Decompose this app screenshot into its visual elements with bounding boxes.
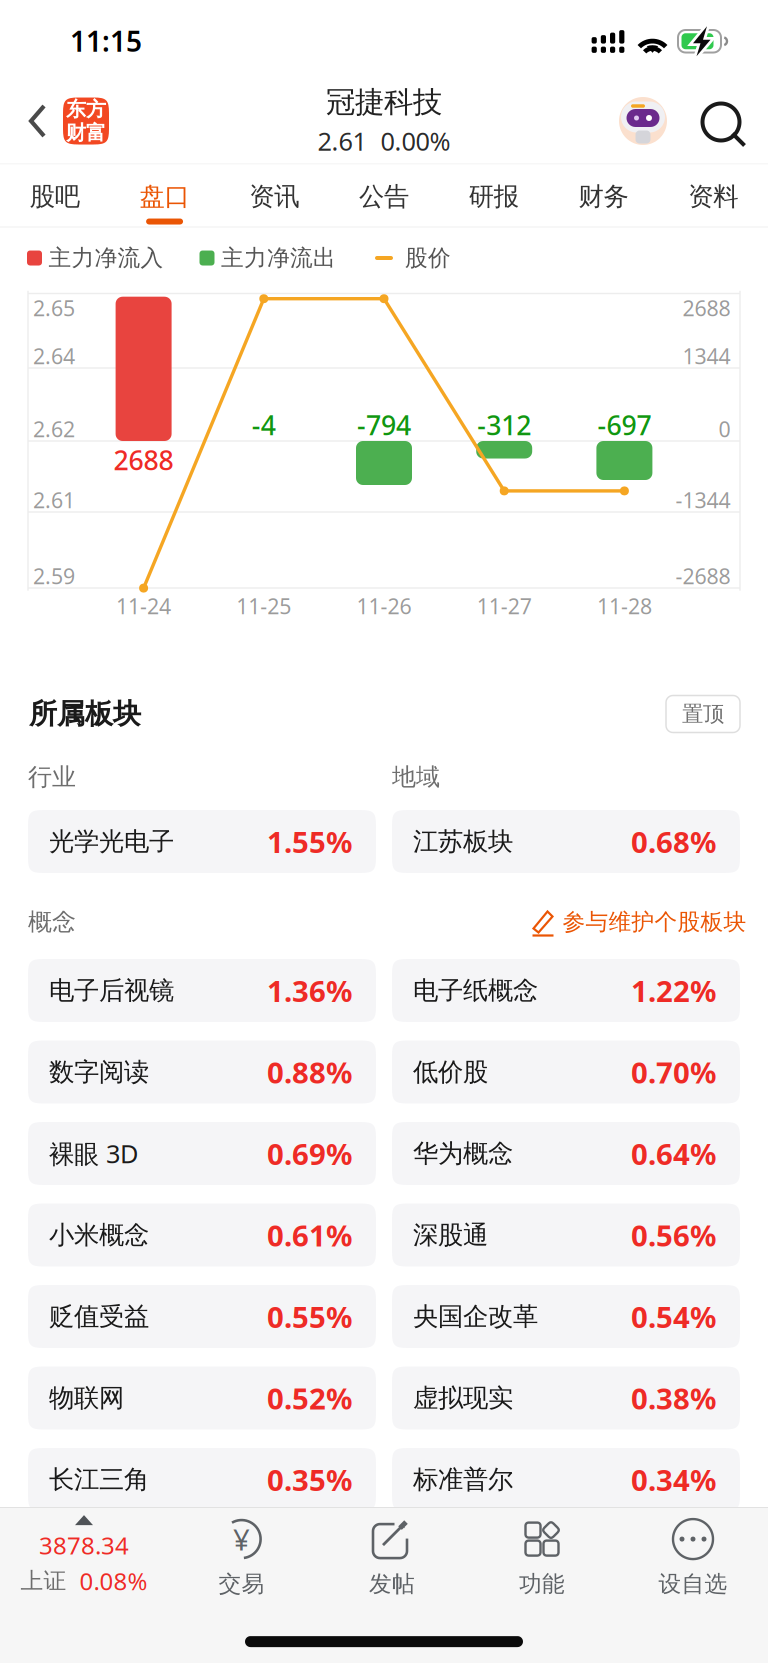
staticText: -4: [252, 407, 276, 443]
button[interactable]: 资料: [658, 164, 768, 227]
button[interactable]: 标准普尔: [392, 1448, 740, 1511]
staticText: ¥: [233, 1520, 250, 1559]
button[interactable]: 研报: [439, 164, 549, 227]
staticText: 1.36%: [267, 971, 352, 1010]
staticText: 0.56%: [631, 1215, 716, 1254]
button[interactable]: 央国企改革: [392, 1285, 740, 1348]
button[interactable]: 返回: [0, 78, 121, 164]
button[interactable]: 电子纸概念: [392, 959, 740, 1022]
button[interactable]: 搜索: [682, 78, 758, 164]
staticText: 2.59: [33, 562, 75, 590]
button[interactable]: 资讯: [219, 164, 329, 227]
button[interactable]: 股吧: [0, 164, 110, 227]
button[interactable]: 深股通: [392, 1203, 740, 1266]
staticText: 标准普尔: [413, 1464, 513, 1495]
staticText: 置顶: [682, 701, 724, 727]
staticText: -312: [477, 407, 531, 443]
staticText: 功能: [519, 1570, 565, 1598]
staticText: 主力净流入: [48, 244, 163, 272]
staticText: 东方: [66, 97, 106, 121]
button[interactable]: 物联网: [28, 1366, 376, 1429]
staticText: 上证: [20, 1567, 66, 1595]
staticText: 深股通: [413, 1219, 488, 1250]
staticText: -697: [597, 407, 651, 443]
staticText: 交易: [219, 1570, 265, 1598]
button[interactable]: 华为概念: [392, 1122, 740, 1185]
staticText: -2688: [675, 562, 730, 590]
staticText: 长江三角: [49, 1464, 149, 1495]
button[interactable]: 公告: [329, 164, 439, 227]
staticText: 0: [718, 415, 730, 443]
staticText: 0.69%: [267, 1134, 352, 1173]
button[interactable]: 盘口: [110, 164, 219, 227]
staticText: 0.34%: [631, 1460, 716, 1499]
staticText: 财富: [66, 120, 106, 145]
staticText: 0.55%: [267, 1297, 352, 1336]
button[interactable]: 设自选: [620, 1512, 765, 1604]
button[interactable]: 低价股: [392, 1040, 740, 1103]
button[interactable]: 虚拟现实: [392, 1366, 740, 1429]
button[interactable]: 发帖: [319, 1512, 464, 1604]
staticText: 0.88%: [267, 1052, 352, 1091]
staticText: 电子纸概念: [413, 975, 538, 1006]
staticText: 0.64%: [631, 1134, 716, 1173]
staticText: 11-27: [477, 592, 532, 620]
button[interactable]: 功能: [469, 1512, 614, 1604]
button[interactable]: 长江三角: [28, 1448, 376, 1511]
staticText: 0.08%: [79, 1565, 147, 1597]
staticText: 冠捷科技: [326, 84, 442, 120]
staticText: 股吧: [30, 181, 80, 212]
staticText: 1.22%: [631, 971, 716, 1010]
staticText: -1344: [675, 486, 730, 514]
button[interactable]: 参与维护个股板块: [531, 900, 746, 944]
staticText: 2.64: [33, 342, 75, 370]
staticText: 发帖: [369, 1570, 415, 1598]
staticText: 概念: [28, 907, 76, 937]
staticText: 设自选: [658, 1570, 727, 1598]
staticText: 参与维护个股板块: [562, 908, 746, 936]
staticText: 电子后视镜: [49, 975, 174, 1006]
staticText: 小米概念: [49, 1219, 149, 1250]
button[interactable]: 数字阅读: [28, 1040, 376, 1103]
staticText: 公告: [359, 181, 409, 212]
staticText: 0.68%: [631, 822, 716, 861]
staticText: 主力净流出: [221, 244, 336, 272]
button[interactable]: 智能助手: [611, 78, 675, 164]
staticText: 2.61 0.00%: [317, 124, 450, 158]
button[interactable]: 裸眼 3D: [28, 1122, 376, 1185]
button[interactable]: 光学光电子: [28, 810, 376, 873]
button[interactable]: 财务: [549, 164, 658, 227]
staticText: 2688: [114, 442, 174, 478]
button[interactable]: 贬值受益: [28, 1285, 376, 1348]
staticText: 华为概念: [413, 1138, 513, 1169]
staticText: 11-28: [597, 592, 652, 620]
staticText: 财务: [578, 181, 628, 212]
staticText: 11-25: [236, 592, 291, 620]
staticText: 0.38%: [631, 1378, 716, 1417]
staticText: 2.65: [33, 294, 75, 322]
staticText: 11-26: [356, 592, 411, 620]
staticText: 1344: [682, 342, 730, 370]
button[interactable]: 电子后视镜: [28, 959, 376, 1022]
staticText: 所属板块: [29, 697, 141, 731]
staticText: 地域: [392, 762, 440, 792]
staticText: 0.70%: [631, 1052, 716, 1091]
button[interactable]: 置顶: [666, 695, 740, 732]
staticText: 低价股: [413, 1056, 488, 1087]
staticText: 行业: [28, 762, 76, 792]
staticText: 11-24: [116, 592, 171, 620]
button[interactable]: 江苏板块: [392, 810, 740, 873]
staticText: 0.52%: [267, 1378, 352, 1417]
button[interactable]: ¥: [169, 1512, 314, 1604]
staticText: 研报: [469, 181, 519, 212]
staticText: 资料: [688, 181, 738, 212]
staticText: 物联网: [49, 1382, 124, 1413]
staticText: 股价: [405, 244, 451, 272]
button[interactable]: 小米概念: [28, 1203, 376, 1266]
staticText: 0.54%: [631, 1297, 716, 1336]
staticText: -794: [357, 407, 411, 443]
staticText: 江苏板块: [413, 826, 513, 857]
button[interactable]: 3878.34: [6, 1508, 161, 1604]
staticText: 2688: [682, 294, 730, 322]
staticText: 2.61: [33, 486, 75, 514]
